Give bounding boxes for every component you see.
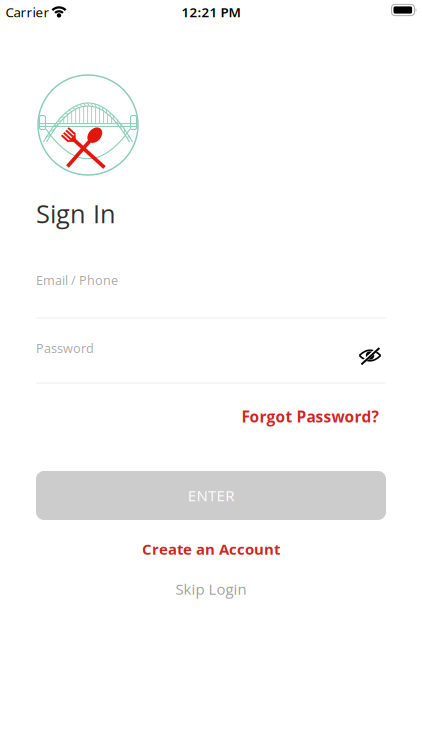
staticText: Carrier <box>5 3 49 21</box>
staticText: Password <box>36 339 94 357</box>
staticText: Skip Login <box>175 579 246 599</box>
button[interactable]: Skip Login <box>175 579 246 599</box>
staticText: ENTER <box>188 485 234 506</box>
staticText: Email / Phone <box>36 271 118 289</box>
button[interactable]: ENTER <box>36 471 386 520</box>
staticText: Create an Account <box>142 539 280 559</box>
button[interactable]: Password <box>36 330 386 383</box>
staticText: Sign In <box>36 196 116 231</box>
button[interactable]: Email / Phone <box>36 265 386 318</box>
button[interactable]: Show password <box>355 342 385 368</box>
staticText: 12:21 PM <box>181 3 240 21</box>
staticText: Forgot Password? <box>241 406 378 427</box>
button[interactable]: Create an Account <box>142 539 280 559</box>
button[interactable]: Forgot Password? <box>241 406 378 427</box>
